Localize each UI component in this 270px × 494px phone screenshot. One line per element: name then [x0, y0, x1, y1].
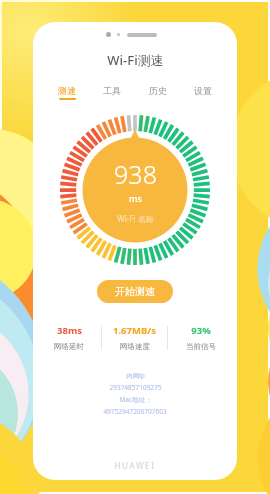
staticText: 29374857109275	[109, 383, 162, 392]
staticText: 网络速度	[120, 342, 150, 351]
staticText: 历史	[149, 85, 167, 96]
staticText: 开始测速	[115, 285, 155, 298]
button[interactable]: 设置	[188, 83, 218, 102]
button[interactable]: 93%	[168, 324, 233, 351]
staticText: Mac地址：	[119, 395, 152, 404]
button[interactable]: 工具	[97, 83, 127, 102]
staticText: 工具	[103, 85, 121, 96]
staticText: 38ms	[57, 324, 82, 337]
staticText: 测速	[58, 85, 76, 96]
staticText: Wi-Fi测速	[107, 51, 164, 69]
staticText: 1.67MB/s	[113, 324, 156, 337]
staticText: 938	[114, 157, 157, 191]
staticText: ms	[129, 192, 142, 204]
staticText: Wi-Fi 名称	[117, 213, 154, 224]
button[interactable]: 开始测速	[97, 280, 173, 303]
staticText: 内网ip	[126, 371, 145, 380]
staticText: 网络延时	[54, 342, 84, 351]
staticText: HUAWEI	[114, 460, 156, 471]
staticText: 设置	[194, 85, 212, 96]
button[interactable]: 1.67MB/s	[102, 324, 167, 351]
button[interactable]: 38ms	[37, 324, 101, 351]
staticText: 93%	[191, 324, 211, 337]
staticText: 当前信号	[186, 342, 216, 351]
staticText: 49752947206707603	[103, 407, 167, 416]
button[interactable]: 历史	[143, 83, 173, 102]
button[interactable]: 测速	[52, 83, 82, 102]
